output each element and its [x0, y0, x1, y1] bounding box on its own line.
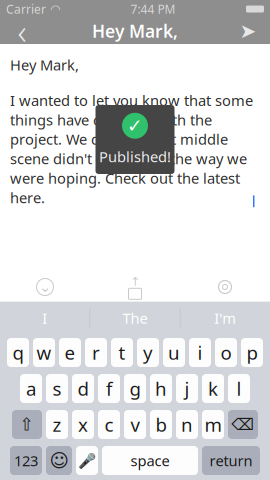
- button[interactable]: a: [20, 374, 42, 403]
- button[interactable]: b: [150, 410, 172, 439]
- button[interactable]: Shift: [12, 410, 42, 439]
- button[interactable]: The: [90, 302, 180, 334]
- button[interactable]: i: [189, 338, 211, 367]
- button[interactable]: s: [46, 374, 68, 403]
- button[interactable]: Delete: [228, 410, 258, 439]
- staticText: c: [104, 412, 113, 437]
- staticText: d: [77, 376, 88, 401]
- button[interactable]: o: [215, 338, 237, 367]
- button[interactable]: r: [85, 338, 107, 367]
- staticText: f: [106, 376, 112, 401]
- staticText: a: [26, 376, 36, 401]
- staticText: t: [118, 340, 125, 365]
- button[interactable]: Dictate: [76, 446, 98, 475]
- staticText: k: [208, 376, 218, 401]
- staticText: ◠: [50, 2, 60, 16]
- button[interactable]: l: [228, 374, 250, 403]
- staticText: ⌫: [231, 415, 254, 434]
- staticText: l: [236, 376, 241, 401]
- button[interactable]: n: [176, 410, 198, 439]
- button[interactable]: Back: [0, 18, 44, 44]
- button[interactable]: q: [7, 338, 29, 367]
- staticText: Carrier: [6, 1, 46, 17]
- button[interactable]: h: [150, 374, 172, 403]
- button[interactable]: e: [59, 338, 81, 367]
- button[interactable]: Share: [90, 272, 180, 302]
- button[interactable]: k: [202, 374, 224, 403]
- staticText: I'm: [214, 308, 236, 328]
- staticText: o: [220, 340, 231, 365]
- button[interactable]: t: [111, 338, 133, 367]
- staticText: g: [129, 376, 140, 401]
- button[interactable]: v: [124, 410, 146, 439]
- staticText: y: [143, 340, 153, 365]
- button[interactable]: w: [33, 338, 55, 367]
- staticText: u: [168, 340, 180, 365]
- staticText: I wanted to let you know that some thing…: [10, 90, 253, 207]
- button[interactable]: j: [176, 374, 198, 403]
- button[interactable]: Send: [226, 18, 270, 44]
- button[interactable]: f: [98, 374, 120, 403]
- button[interactable]: space: [102, 446, 198, 475]
- button[interactable]: u: [163, 338, 185, 367]
- staticText: j: [184, 376, 189, 401]
- staticText: i: [197, 340, 202, 365]
- staticText: I: [42, 308, 47, 328]
- staticText: return: [209, 451, 252, 470]
- staticText: w: [36, 340, 51, 365]
- staticText: h: [155, 376, 167, 401]
- button[interactable]: I'm: [180, 302, 270, 334]
- staticText: z: [52, 412, 61, 437]
- button[interactable]: return: [202, 446, 260, 475]
- staticText: ⌄: [39, 279, 51, 295]
- staticText: n: [181, 412, 193, 437]
- button[interactable]: m: [202, 410, 224, 439]
- button[interactable]: 123: [10, 446, 42, 475]
- button[interactable]: p: [241, 338, 263, 367]
- staticText: ↑: [130, 275, 140, 288]
- button[interactable]: Emoji: [46, 446, 72, 475]
- button[interactable]: z: [46, 410, 68, 439]
- staticText: space: [130, 451, 169, 470]
- button[interactable]: Settings: [180, 272, 270, 302]
- staticText: q: [12, 340, 23, 365]
- staticText: Hey Mark,: [10, 55, 79, 74]
- button[interactable]: y: [137, 338, 159, 367]
- staticText: p: [246, 340, 257, 365]
- staticText: x: [78, 412, 88, 437]
- staticText: Published!: [99, 147, 171, 166]
- button[interactable]: x: [72, 410, 94, 439]
- staticText: m: [204, 412, 221, 437]
- staticText: s: [52, 376, 61, 401]
- staticText: v: [130, 412, 139, 437]
- button[interactable]: g: [124, 374, 146, 403]
- button[interactable]: I: [0, 302, 90, 334]
- staticText: The: [122, 308, 147, 328]
- staticText: ‹: [17, 8, 26, 54]
- staticText: ☺: [49, 450, 68, 471]
- staticText: ✓: [127, 115, 143, 136]
- button[interactable]: c: [98, 410, 120, 439]
- staticText: ⇧: [19, 415, 34, 434]
- staticText: b: [155, 412, 166, 437]
- button[interactable]: d: [72, 374, 94, 403]
- staticText: 7:44 PM: [130, 1, 175, 17]
- staticText: 123: [14, 451, 38, 470]
- staticText: Hey Mark,: [92, 19, 178, 42]
- staticText: 🎤: [78, 452, 96, 469]
- staticText: e: [64, 340, 75, 365]
- staticText: ➤: [239, 20, 256, 42]
- button[interactable]: Hide keyboard: [0, 272, 90, 302]
- staticText: r: [92, 340, 100, 365]
